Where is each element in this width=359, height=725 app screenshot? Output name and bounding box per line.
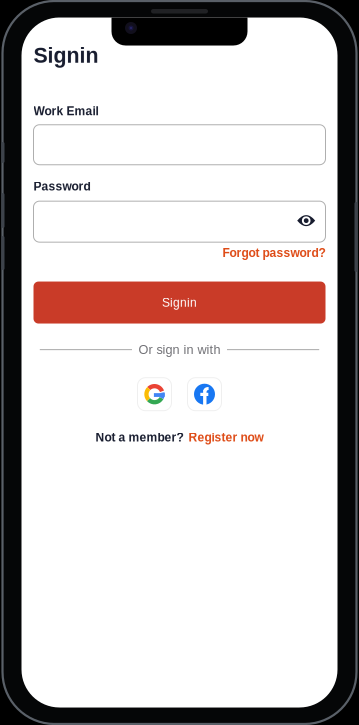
- staticText: Or sign in with: [138, 343, 220, 357]
- staticText: Password: [33, 180, 90, 193]
- button[interactable]: Signin: [33, 282, 325, 324]
- button[interactable]: Show password: [297, 215, 325, 228]
- button[interactable]: Register now: [188, 431, 263, 444]
- staticText: Forgot password?: [222, 246, 325, 259]
- staticText: Register now: [188, 431, 263, 444]
- staticText: Signin: [162, 296, 197, 309]
- staticText: Work Email: [33, 104, 98, 118]
- button[interactable]: Sign in with Google: [137, 378, 171, 411]
- staticText: Not a member?: [95, 431, 183, 444]
- button[interactable]: Forgot password?: [222, 246, 325, 259]
- staticText: Signin: [33, 43, 98, 67]
- button[interactable]: Sign in with Facebook: [187, 378, 221, 411]
